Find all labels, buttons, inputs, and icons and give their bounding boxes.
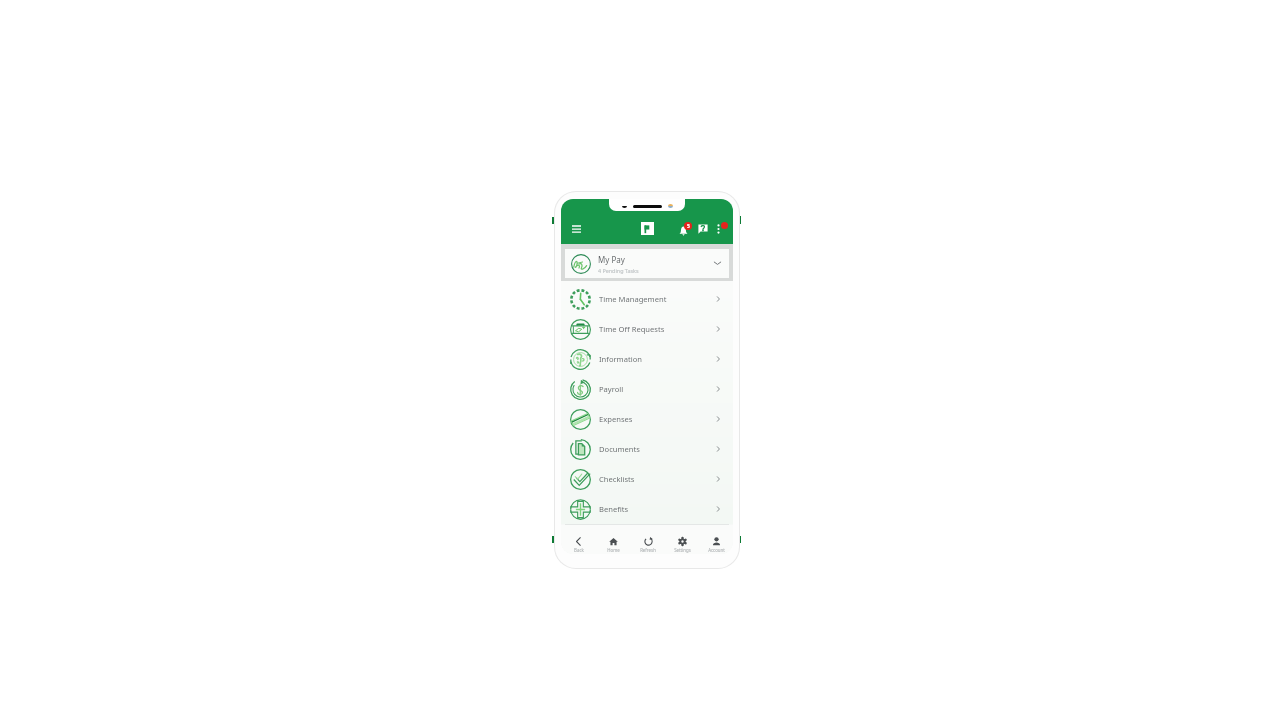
button[interactable]: Notifications [676,221,692,237]
button[interactable]: Benefits [561,494,733,524]
staticText: Documents [599,444,640,454]
staticText: 4 Pending Tasks [598,267,639,274]
button[interactable]: Home logo [638,219,656,237]
staticText: Time Off Requests [599,324,665,334]
button[interactable]: Payroll [561,374,733,404]
staticText: 5 [687,223,690,230]
button[interactable]: Menu [567,220,585,238]
staticText: My Pay [598,254,625,265]
button[interactable]: Help [695,221,711,237]
button[interactable]: Information [561,344,733,374]
staticText: Benefits [599,504,629,514]
button[interactable]: Settings [665,537,699,554]
button[interactable]: Refresh [631,537,665,554]
staticText: Time Management [599,294,667,304]
staticText: Account [708,547,725,553]
staticText: Payroll [599,384,624,394]
button[interactable]: Home [596,537,631,554]
button[interactable]: Time Off Requests [561,314,733,344]
button[interactable]: My Pay [565,249,729,278]
button[interactable]: Documents [561,434,733,464]
staticText: Home [607,547,620,553]
staticText: Settings [674,547,691,553]
button[interactable]: More options [713,221,728,236]
staticText: Information [599,354,642,364]
button[interactable]: Checklists [561,464,733,494]
button[interactable]: Time Management [561,284,733,314]
staticText: Checklists [599,474,635,484]
staticText: Back [574,547,584,553]
button[interactable]: Expenses [561,404,733,434]
staticText: Refresh [640,547,656,553]
staticText: Expenses [599,414,633,424]
button[interactable]: Account [699,537,733,554]
button[interactable]: Back [561,537,596,554]
